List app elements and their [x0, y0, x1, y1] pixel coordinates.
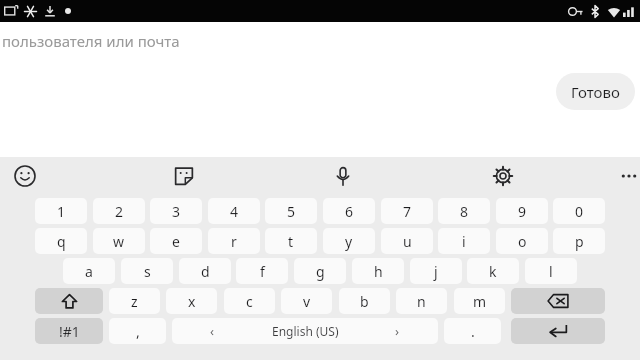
button[interactable]: r [208, 228, 260, 254]
staticText: 8 [460, 202, 469, 221]
staticText: s [144, 262, 151, 281]
button[interactable]: n [396, 288, 447, 314]
staticText: 3 [172, 202, 181, 221]
staticText: h [374, 262, 383, 281]
button[interactable]: Shift [35, 288, 103, 314]
staticText: z [131, 292, 138, 311]
staticText: v [303, 292, 311, 311]
button[interactable]: b [339, 288, 390, 314]
staticText: l [549, 262, 553, 281]
button[interactable]: f [236, 258, 288, 284]
button[interactable]: 4 [208, 198, 260, 224]
button[interactable]: y [323, 228, 375, 254]
staticText: e [172, 232, 180, 251]
button[interactable]: e [150, 228, 202, 254]
staticText: p [575, 232, 584, 251]
button[interactable]: z [109, 288, 160, 314]
button[interactable]: 3 [150, 198, 202, 224]
staticText: y [345, 232, 353, 251]
staticText: j [434, 262, 438, 281]
staticText: t [288, 232, 294, 251]
staticText: 7 [403, 202, 412, 221]
staticText: 9 [518, 202, 527, 221]
staticText: a [85, 262, 93, 281]
button[interactable]: j [410, 258, 462, 284]
button[interactable]: Готово [556, 73, 635, 110]
staticText: m [473, 292, 487, 311]
button[interactable]: Enter [511, 318, 605, 344]
staticText: q [57, 232, 66, 251]
staticText: w [113, 232, 125, 251]
staticText: › [395, 322, 400, 340]
button[interactable]: 5 [265, 198, 317, 224]
button[interactable]: a [63, 258, 115, 284]
button[interactable]: English (US) [172, 318, 438, 344]
button[interactable]: w [93, 228, 145, 254]
button[interactable]: m [454, 288, 505, 314]
button[interactable]: 9 [496, 198, 548, 224]
button[interactable]: . [444, 318, 501, 344]
staticText: ‹ [210, 322, 215, 340]
button[interactable]: d [179, 258, 231, 284]
button[interactable]: l [525, 258, 577, 284]
button[interactable]: c [224, 288, 275, 314]
staticText: 5 [287, 202, 296, 221]
staticText: 1 [57, 202, 66, 221]
button[interactable]: u [381, 228, 433, 254]
button[interactable]: x [166, 288, 217, 314]
staticText: Готово [571, 82, 620, 102]
staticText: g [316, 262, 325, 281]
button[interactable]: 8 [438, 198, 490, 224]
staticText: i [462, 232, 466, 251]
button[interactable]: s [121, 258, 173, 284]
button[interactable]: i [438, 228, 490, 254]
button[interactable]: Stickers [167, 159, 201, 193]
staticText: c [246, 292, 253, 311]
button[interactable]: Voice input [326, 159, 360, 193]
staticText: d [201, 262, 210, 281]
staticText: 6 [345, 202, 354, 221]
button[interactable]: k [467, 258, 519, 284]
button[interactable]: o [496, 228, 548, 254]
staticText: English (US) [272, 323, 339, 339]
button[interactable]: More options [612, 159, 640, 193]
button[interactable]: 0 [553, 198, 605, 224]
staticText: r [231, 232, 237, 251]
staticText: x [188, 292, 196, 311]
button[interactable]: h [352, 258, 404, 284]
staticText: n [417, 292, 426, 311]
staticText: b [360, 292, 369, 311]
staticText: f [260, 262, 265, 281]
button[interactable]: !#1 [35, 318, 103, 344]
staticText: 4 [230, 202, 239, 221]
button[interactable]: Backspace [511, 288, 605, 314]
staticText: k [489, 262, 497, 281]
button[interactable]: 1 [35, 198, 87, 224]
button[interactable]: Emoji [8, 159, 42, 193]
button[interactable]: 7 [381, 198, 433, 224]
button[interactable]: g [294, 258, 346, 284]
staticText: u [403, 232, 412, 251]
button[interactable]: , [109, 318, 166, 344]
staticText: !#1 [59, 322, 80, 341]
staticText: пользователя или почта [2, 31, 180, 51]
button[interactable]: p [553, 228, 605, 254]
button[interactable]: 6 [323, 198, 375, 224]
staticText: . [471, 322, 475, 341]
staticText: 0 [575, 202, 584, 221]
button[interactable]: q [35, 228, 87, 254]
button[interactable]: 2 [93, 198, 145, 224]
button[interactable]: Settings [486, 159, 520, 193]
staticText: o [518, 232, 527, 251]
button[interactable]: t [265, 228, 317, 254]
button[interactable]: v [281, 288, 332, 314]
staticText: , [136, 322, 140, 341]
staticText: 2 [115, 202, 124, 221]
